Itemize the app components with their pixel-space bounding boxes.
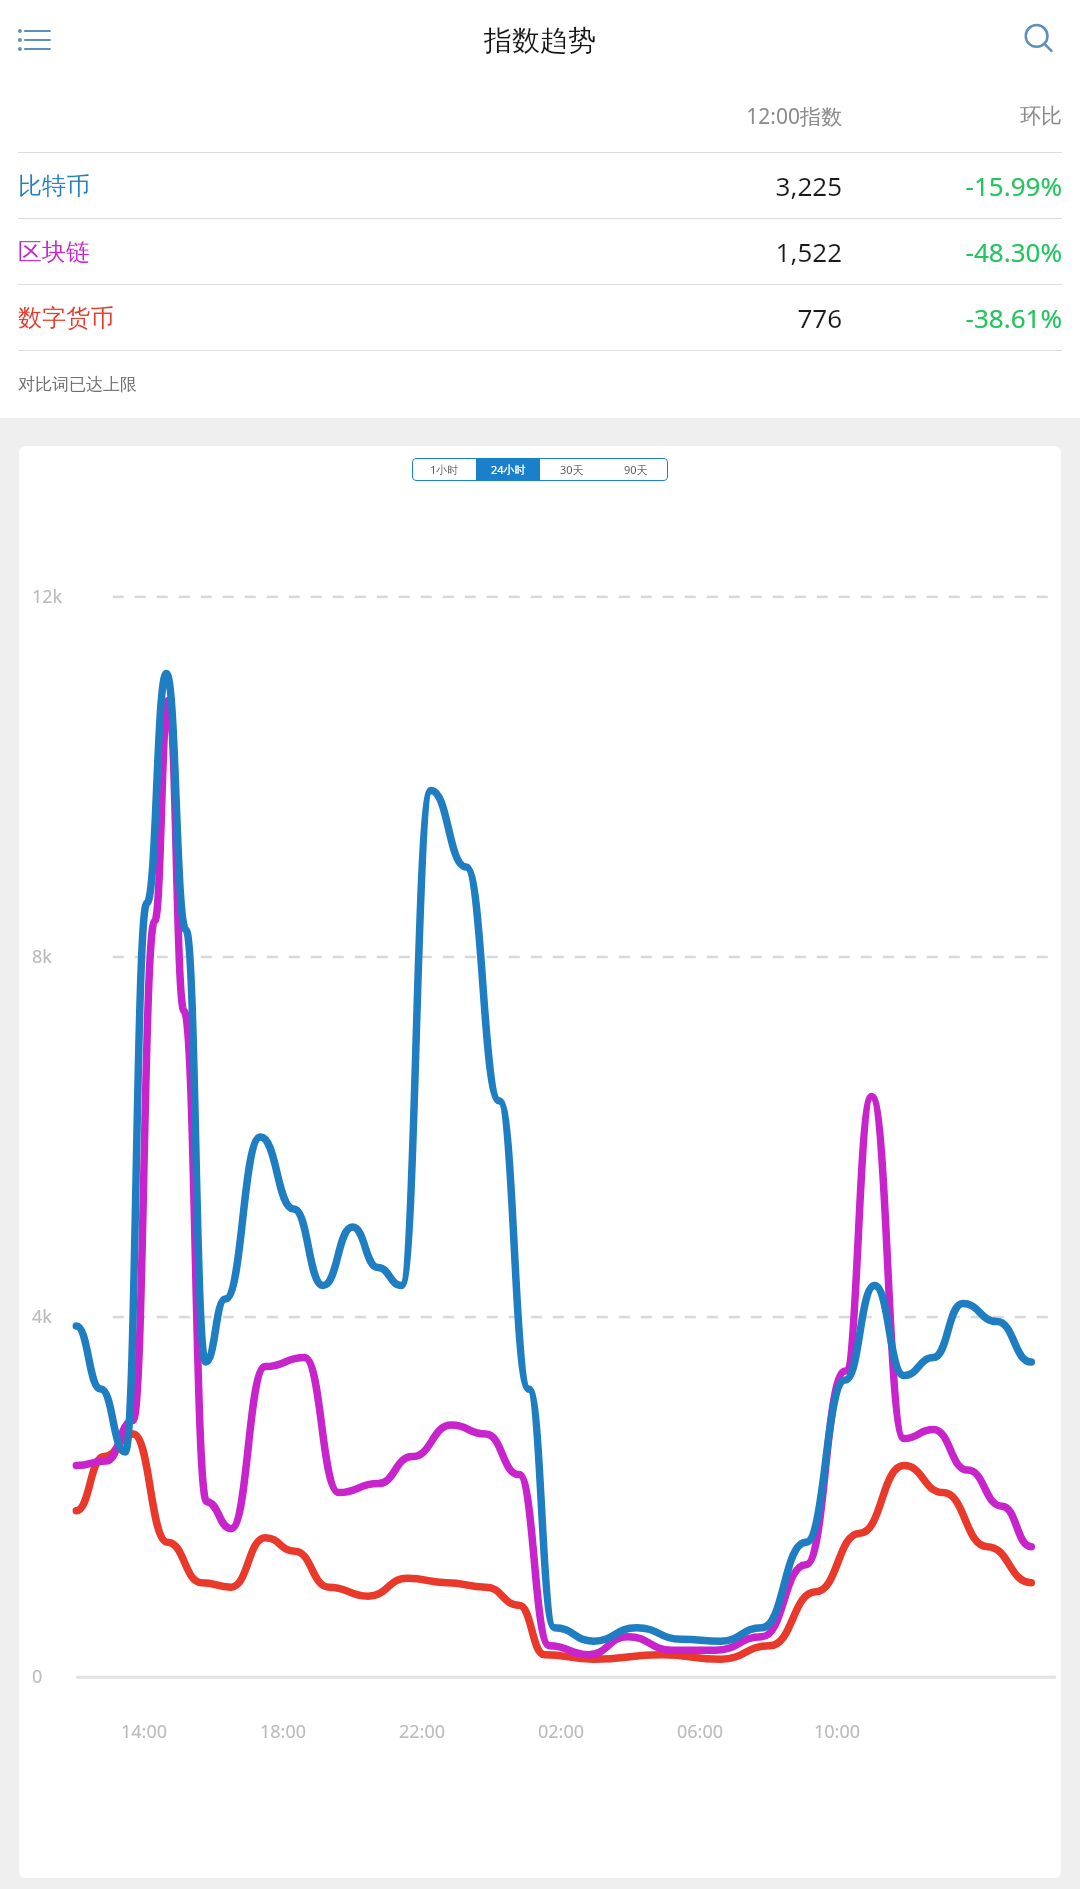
staticText: 18:00 — [260, 1719, 307, 1744]
staticText: 12:00指数 — [692, 102, 842, 131]
button[interactable]: 1小时 — [412, 458, 476, 481]
staticText: -48.30% — [912, 234, 1062, 269]
staticText: 比特币 — [18, 171, 90, 201]
staticText: 24小时 — [491, 462, 526, 477]
staticText: 3,225 — [692, 168, 842, 203]
staticText: -38.61% — [912, 300, 1062, 335]
staticText: 22:00 — [399, 1719, 446, 1744]
staticText: 02:00 — [538, 1719, 585, 1744]
staticText: 指数趋势 — [484, 23, 596, 58]
staticText: 0 — [32, 1664, 43, 1689]
staticText: 30天 — [560, 462, 584, 477]
button[interactable]: Menu — [6, 12, 62, 68]
staticText: 1,522 — [692, 234, 842, 269]
staticText: 4k — [32, 1304, 52, 1329]
staticText: 90天 — [624, 462, 648, 477]
staticText: 14:00 — [121, 1719, 168, 1744]
staticText: 区块链 — [18, 237, 90, 267]
staticText: 10:00 — [814, 1719, 861, 1744]
button[interactable]: Search — [1012, 12, 1068, 68]
staticText: 12k — [32, 584, 63, 609]
button[interactable]: 数字货币 — [0, 285, 1080, 350]
staticText: 776 — [692, 300, 842, 335]
button[interactable]: 30天 — [540, 458, 604, 481]
staticText: 环比 — [912, 103, 1062, 129]
staticText: 06:00 — [677, 1719, 724, 1744]
button[interactable]: 比特币 — [0, 153, 1080, 218]
staticText: 数字货币 — [18, 303, 114, 333]
staticText: 8k — [32, 944, 52, 969]
button[interactable]: 90天 — [604, 458, 668, 481]
button[interactable]: 区块链 — [0, 219, 1080, 284]
staticText: 对比词已达上限 — [18, 374, 137, 395]
staticText: -15.99% — [912, 168, 1062, 203]
button[interactable]: 24小时 — [476, 458, 540, 481]
staticText: 1小时 — [430, 462, 459, 477]
